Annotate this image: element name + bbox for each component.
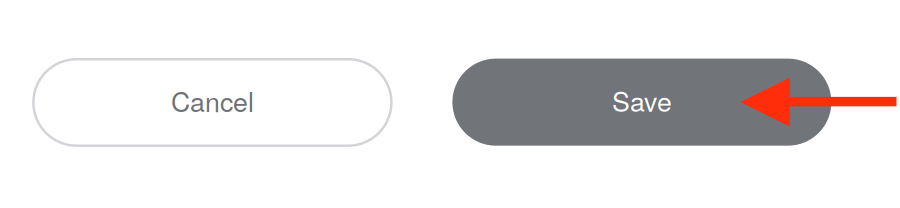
- button[interactable]: Save: [452, 59, 831, 146]
- button[interactable]: Cancel: [33, 59, 391, 146]
- staticText: Save: [612, 81, 672, 119]
- staticText: Cancel: [171, 81, 254, 120]
